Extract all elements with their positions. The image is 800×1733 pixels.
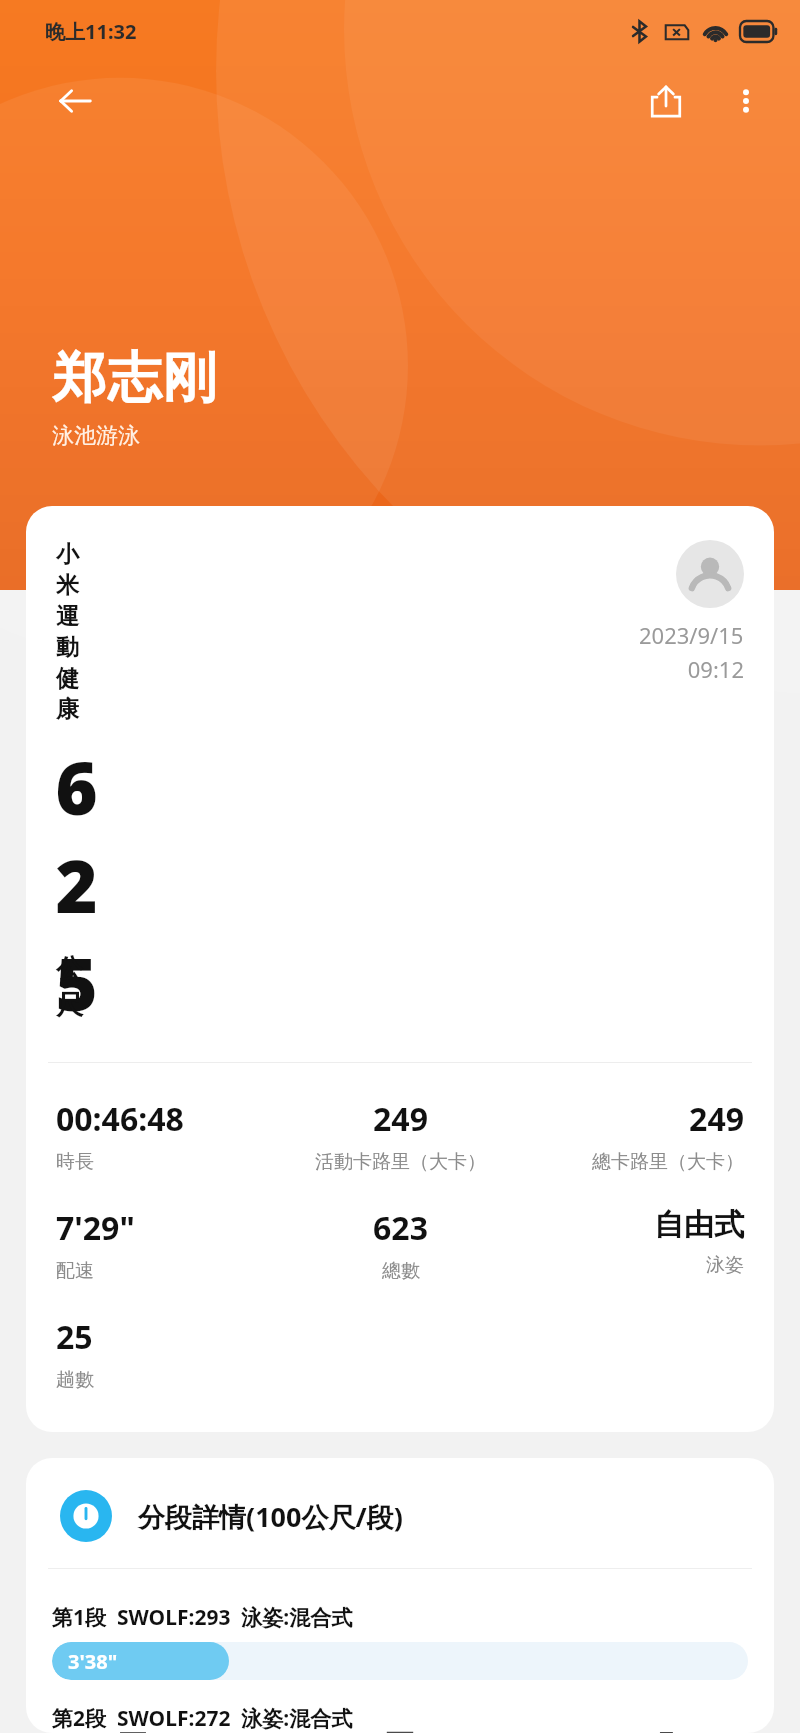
button[interactable]: 分段詳情(100公尺/段)	[26, 1458, 774, 1733]
staticText: 249	[689, 1097, 744, 1141]
staticText: 配速	[56, 1259, 94, 1283]
button[interactable]: Back	[48, 74, 102, 128]
button[interactable]: 小米運動健康	[26, 506, 774, 1432]
staticText: 自由式	[654, 1206, 744, 1244]
staticText: 09:12	[56, 654, 744, 684]
staticText: 活動卡路里（大卡）	[315, 1150, 486, 1174]
staticText: 總卡路里（大卡）	[592, 1150, 744, 1174]
staticText: 7'29"	[56, 1206, 135, 1250]
button[interactable]: Share	[638, 73, 694, 129]
staticText: 第1段 SWOLF:293 泳姿:混合式	[52, 1603, 353, 1632]
staticText: 2023/9/15	[639, 620, 744, 650]
staticText: 分段詳情(100公尺/段)	[138, 1498, 403, 1535]
button[interactable]: More options	[722, 77, 770, 125]
staticText: 趟數	[56, 1368, 94, 1392]
staticText: 249	[373, 1097, 428, 1141]
staticText: 25	[56, 1315, 93, 1359]
staticText: 3'38"	[68, 1648, 118, 1675]
staticText: 總數	[382, 1259, 420, 1283]
staticText: 時長	[56, 1150, 94, 1174]
staticText: 00:46:48	[56, 1097, 184, 1141]
staticText: 第2段 SWOLF:272 泳姿:混合式	[52, 1704, 353, 1733]
staticText: 泳姿	[706, 1253, 744, 1277]
staticText: 晚上11:32	[45, 18, 137, 45]
staticText: 郑志刚	[52, 344, 217, 412]
staticText: 泳池游泳	[52, 422, 140, 450]
staticText: 623	[373, 1206, 428, 1250]
